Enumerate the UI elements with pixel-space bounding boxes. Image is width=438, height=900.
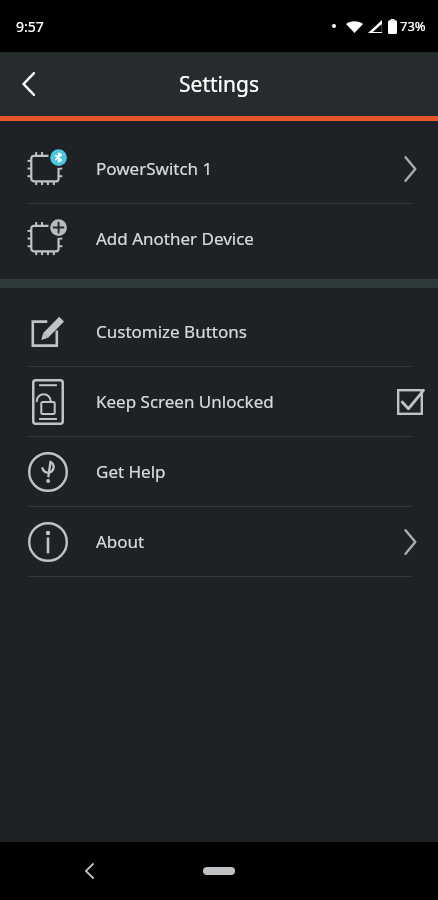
button[interactable]: Add Another Device <box>0 204 438 273</box>
staticText: PowerSwitch 1 <box>96 157 382 180</box>
staticText: Settings <box>179 70 259 99</box>
staticText: 73% <box>400 17 426 35</box>
staticText: 9:57 <box>16 17 44 36</box>
button[interactable]: Back <box>0 56 56 112</box>
staticText: Keep Screen Unlocked <box>96 390 382 413</box>
staticText: Get Help <box>96 460 382 483</box>
button[interactable]: PowerSwitch 1 <box>0 134 438 203</box>
button[interactable]: Home <box>191 856 247 886</box>
button[interactable]: About <box>0 507 438 576</box>
staticText: Customize Buttons <box>96 320 382 343</box>
button[interactable]: Customize Buttons <box>0 297 438 366</box>
staticText: About <box>96 530 382 553</box>
staticText: Add Another Device <box>96 227 382 250</box>
button[interactable]: Keep Screen Unlocked <box>0 367 438 436</box>
button[interactable]: Get Help <box>0 437 438 506</box>
button[interactable]: Back <box>72 854 106 888</box>
button[interactable]: Keep Screen Unlocked checkbox <box>388 380 432 424</box>
